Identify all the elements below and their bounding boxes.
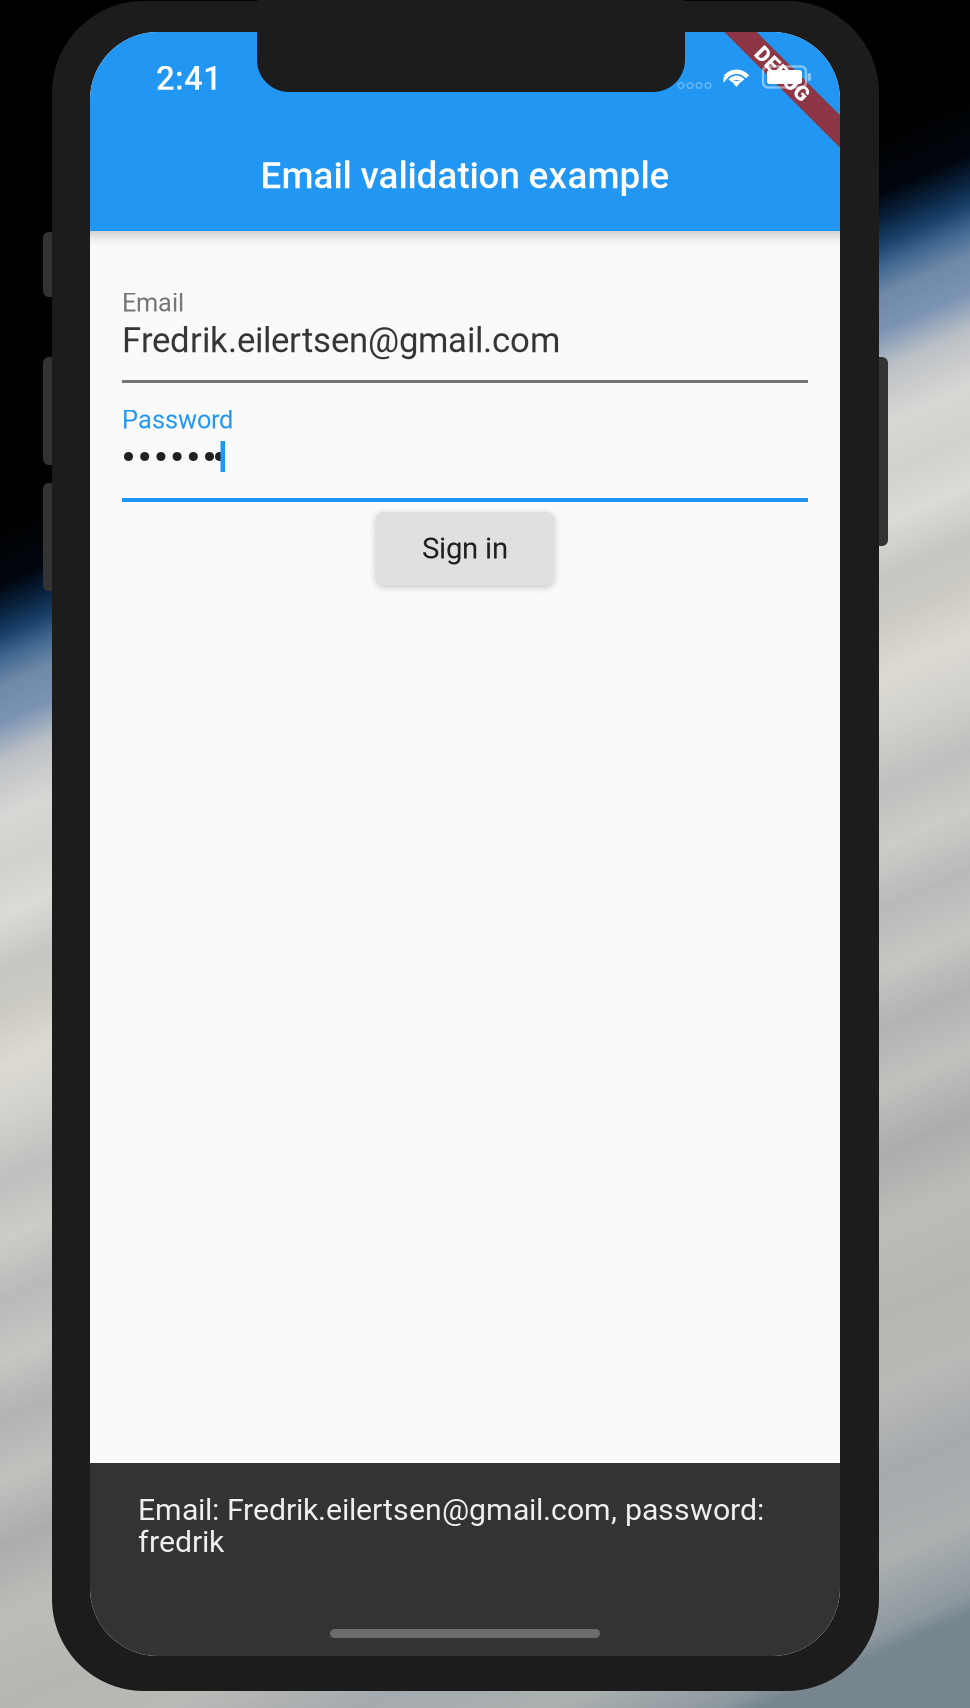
staticText: Fredrik.eilertsen@gmail.com	[122, 320, 560, 361]
button[interactable]: Sign in	[376, 512, 554, 585]
staticText: Email: Fredrik.eilertsen@gmail.com, pass…	[138, 1492, 764, 1527]
staticText: 2:41	[156, 59, 222, 98]
staticText: DEBUG	[737, 87, 806, 112]
staticText: Sign in	[422, 531, 508, 566]
staticText: Email	[122, 288, 184, 318]
staticText: Password	[122, 405, 233, 435]
staticText: Email validation example	[260, 154, 669, 197]
staticText: fredrik	[138, 1524, 224, 1559]
